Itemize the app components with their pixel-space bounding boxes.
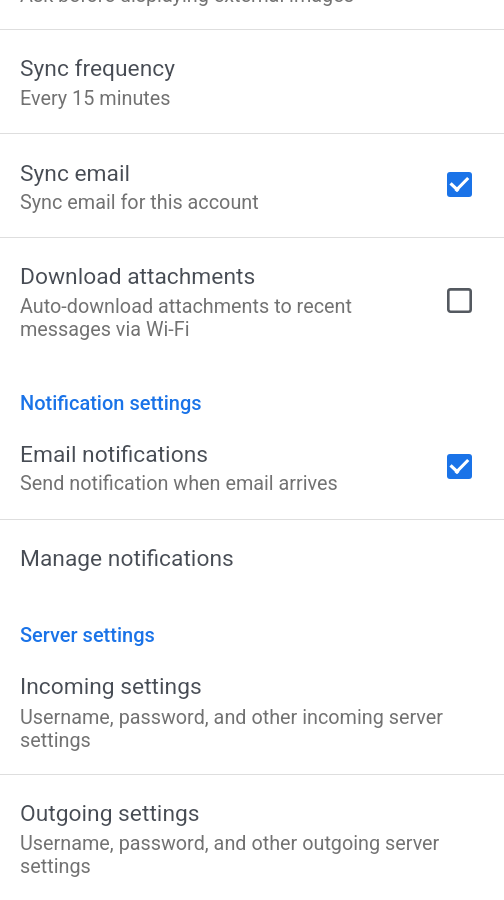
staticText: Incoming settings	[20, 673, 460, 700]
staticText: Server settings	[20, 623, 155, 646]
button[interactable]: Incoming settings	[0, 655, 504, 774]
button[interactable]: Download attachments	[0, 238, 504, 372]
button[interactable]: Sync frequency	[0, 30, 504, 133]
staticText: Sync email for this account	[20, 191, 430, 214]
button[interactable]: Manage notifications	[0, 520, 504, 612]
button[interactable]: Email notifications, checked	[447, 454, 472, 479]
button[interactable]: Ask before displaying external images	[0, 0, 504, 29]
staticText: Ask before displaying external images	[20, 0, 354, 7]
staticText: Send notification when email arrives	[20, 472, 430, 495]
staticText: Download attachments	[20, 263, 375, 290]
staticText: Sync frequency	[20, 55, 484, 82]
staticText: Notification settings	[20, 391, 202, 414]
button[interactable]: Sync email, checked	[447, 172, 472, 197]
staticText: Sync email	[20, 160, 430, 187]
staticText: Auto-download attachments to recent mess…	[20, 295, 375, 341]
button[interactable]: Sync email	[0, 134, 504, 237]
staticText: Username, password, and other outgoing s…	[20, 832, 460, 878]
staticText: Email notifications	[20, 441, 430, 468]
button[interactable]: Email notifications	[0, 425, 504, 519]
staticText: Outgoing settings	[20, 800, 460, 827]
staticText: Manage notifications	[20, 545, 484, 572]
staticText: Every 15 minutes	[20, 87, 484, 110]
button[interactable]: Outgoing settings	[0, 775, 504, 900]
button[interactable]: Download attachments, not checked	[447, 288, 472, 313]
staticText: Username, password, and other incoming s…	[20, 706, 460, 752]
